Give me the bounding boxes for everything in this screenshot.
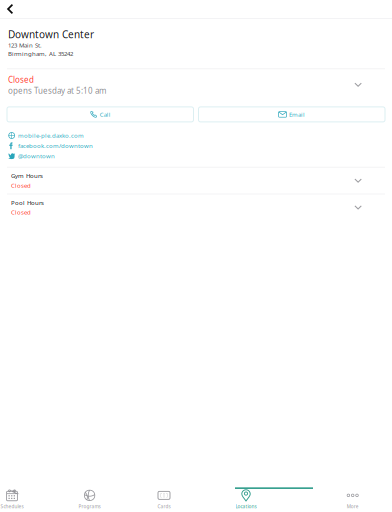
button[interactable]: Call [7,107,193,122]
button[interactable]: Locations [218,488,274,512]
staticText: Closed [8,74,34,85]
button[interactable]: facebook.com/downtown [8,141,384,151]
staticText: facebook.com/downtown [18,142,93,150]
button[interactable]: Back [0,0,19,18]
button[interactable]: Closed [0,69,392,107]
staticText: Programs [79,503,101,510]
staticText: Birmingham, AL 35242 [8,49,73,58]
staticText: More [347,503,359,510]
button[interactable]: Pool Hours [0,194,392,220]
button[interactable]: mobile-ple.daxko.com [8,130,384,141]
staticText: Email [289,110,305,118]
button[interactable]: Gym Hours [0,168,392,194]
staticText: Locations [235,503,256,510]
button[interactable]: More [325,488,381,512]
staticText: Closed [11,181,31,190]
staticText: mobile-ple.daxko.com [18,131,84,140]
staticText: Pool Hours [11,198,44,207]
staticText: Closed [11,208,31,216]
staticText: Schedules [0,503,23,510]
button[interactable]: Cards [136,488,192,512]
staticText: @downtown [18,152,55,160]
staticText: Downtown Center [8,27,94,41]
button[interactable]: Email [198,107,385,122]
button[interactable]: @downtown [8,151,384,161]
staticText: Gym Hours [11,172,43,180]
button[interactable]: Schedules [0,488,40,512]
staticText: Call [100,110,111,118]
staticText: Cards [157,503,170,510]
button[interactable]: Programs [62,488,118,512]
staticText: opens Tuesday at 5:10 am [8,85,106,96]
staticText: 123 Main St. [8,41,42,49]
